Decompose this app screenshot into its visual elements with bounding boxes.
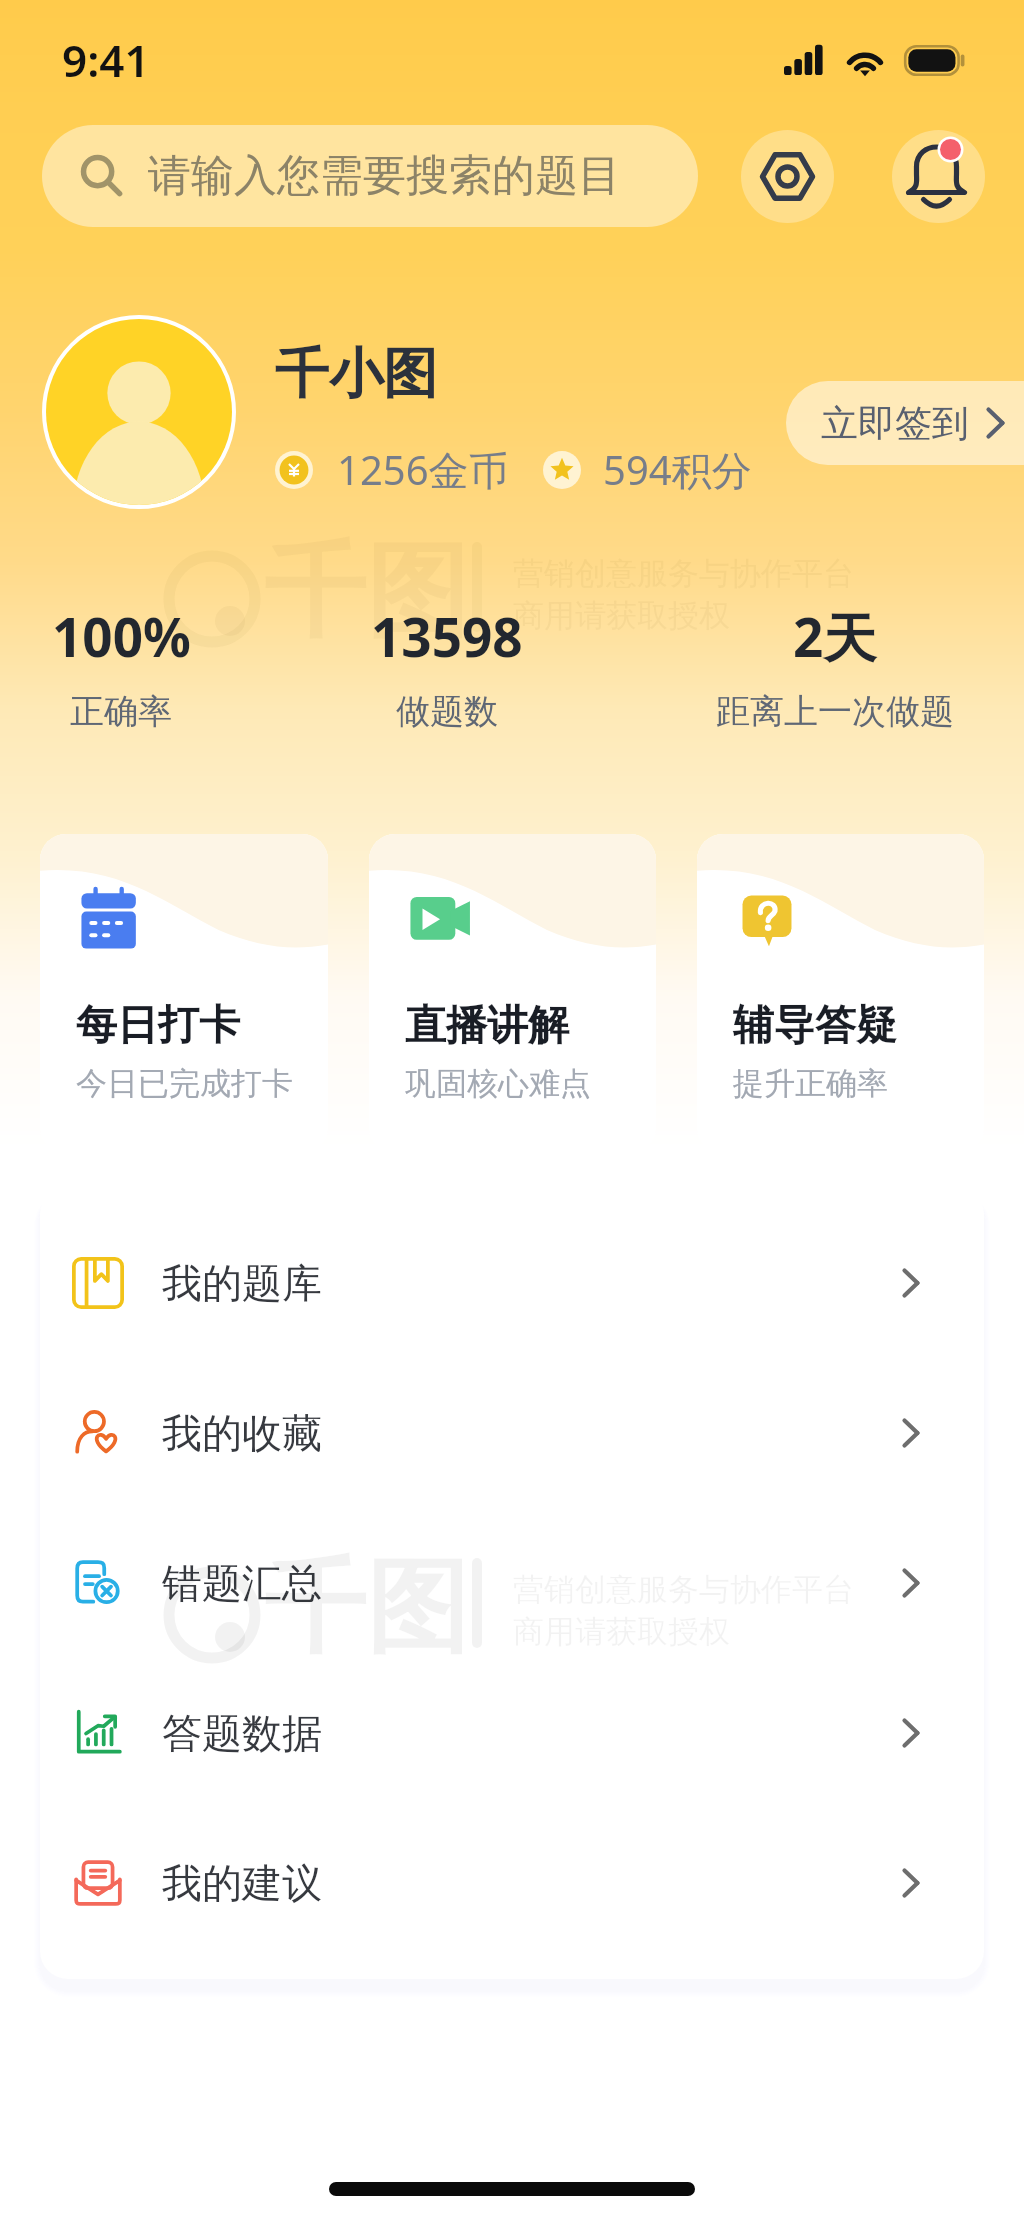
button[interactable]: 请输入您需要搜索的题目 [42,125,698,227]
staticText: 请输入您需要搜索的题目 [148,149,621,203]
button[interactable]: Settings [741,130,834,223]
button[interactable]: 每日打卡 [40,834,328,1154]
staticText: 594积分 [603,442,752,497]
staticText: 正确率 [70,690,172,733]
button[interactable]: Avatar [42,315,236,509]
staticText: 提升正确率 [733,1064,888,1103]
staticText: 9:41 [62,30,150,90]
staticText: 今日已完成打卡 [76,1064,293,1103]
button[interactable]: 我的题库 [40,1208,984,1358]
staticText: 立即签到 [821,400,969,447]
staticText: 每日打卡 [76,1000,240,1052]
staticText: 千图 [264,528,468,656]
staticText: 千小图 [275,340,437,408]
staticText: 100% [52,600,191,672]
staticText: 错题汇总 [162,1558,322,1608]
button[interactable]: 立即签到 [786,381,1024,465]
staticText: 2天 [793,600,877,672]
staticText: 做题数 [396,690,498,733]
staticText: 13598 [371,600,523,672]
button[interactable]: 我的收藏 [40,1358,984,1508]
button[interactable]: 答题数据 [40,1658,984,1808]
staticText: 我的题库 [162,1258,322,1308]
staticText: 我的收藏 [162,1408,322,1458]
staticText: 直播讲解 [405,1000,569,1052]
button[interactable]: 直播讲解 [369,834,656,1154]
staticText: 我的建议 [162,1858,322,1908]
button[interactable]: 错题汇总 [40,1508,984,1658]
staticText: 商用请获取授权 [513,596,730,635]
button[interactable]: Notifications [892,130,985,223]
staticText: 答题数据 [162,1708,322,1758]
staticText: 距离上一次做题 [716,690,954,733]
staticText: 商用请获取授权 [513,1612,730,1651]
button[interactable]: 辅导答疑 [697,834,984,1154]
staticText: 辅导答疑 [733,1000,897,1052]
staticText: 千图 [264,1544,468,1672]
staticText: 营销创意服务与协作平台 [513,554,854,593]
staticText: 1256金币 [337,442,509,497]
staticText: 营销创意服务与协作平台 [513,1570,854,1609]
button[interactable]: 我的建议 [40,1808,984,1958]
staticText: 巩固核心难点 [405,1064,591,1103]
